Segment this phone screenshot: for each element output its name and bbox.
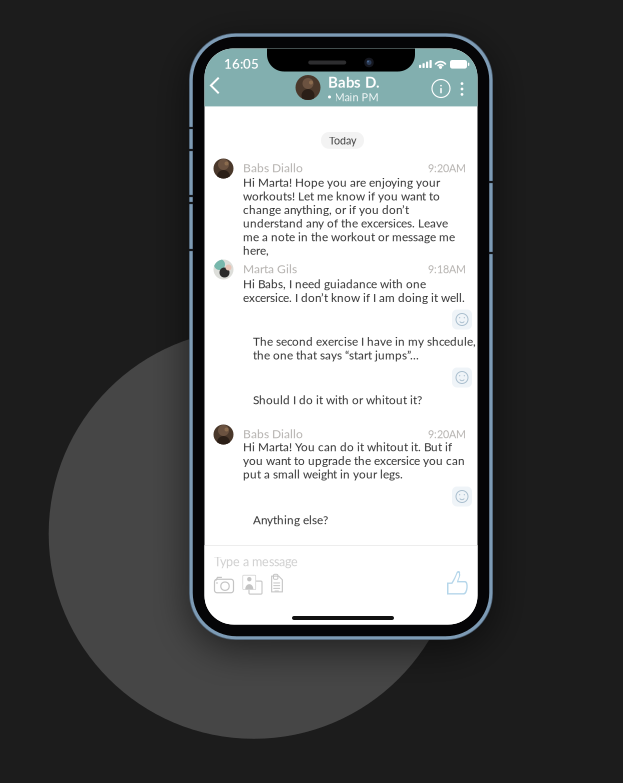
button[interactable]: Add reaction (452, 486, 472, 506)
button[interactable]: Camera (212, 572, 236, 596)
button[interactable]: Send thumbs up (441, 566, 473, 600)
staticText: you want to upgrade the excersice you ca… (243, 453, 465, 467)
staticText: here, (243, 243, 269, 257)
staticText: Hi Marta! You can do it whitout it. But … (243, 440, 452, 454)
staticText: 9:20AM (428, 162, 466, 174)
staticText: 9:20AM (428, 428, 466, 440)
button[interactable]: Back (207, 73, 237, 103)
button[interactable]: Attach document (267, 572, 287, 596)
staticText: the one that says “start jumps”... (253, 348, 419, 362)
staticText: Babs Diallo (243, 160, 303, 175)
staticText: Hi Babs, I need guiadance with one (243, 277, 426, 291)
staticText: Babs Diallo (243, 426, 303, 441)
staticText: 16:05 (224, 55, 259, 71)
staticText: Should I do it with or whitout it? (253, 393, 422, 407)
button[interactable]: Add reaction (452, 367, 472, 387)
staticText: Type a message (214, 554, 298, 569)
staticText: Marta Gils (243, 261, 297, 276)
staticText: put a small weight in your legs. (243, 467, 403, 481)
button[interactable]: Photo library (240, 572, 263, 596)
staticText: 9:18AM (428, 263, 466, 275)
staticText: Today (329, 134, 356, 147)
staticText: Main PM (334, 90, 378, 103)
button[interactable]: Add reaction (452, 309, 472, 329)
staticText: Hi Marta! Hope you are enjoying your (243, 175, 440, 189)
staticText: Anything else? (253, 513, 328, 527)
staticText: understand any of the excersices. Leave (243, 216, 448, 230)
staticText: excersice. I don’t know if I am doing it… (243, 290, 465, 304)
staticText: Babs D. (328, 73, 380, 91)
staticText: me a note in the workout or message me (243, 230, 455, 244)
button[interactable]: Conversation info (430, 77, 452, 99)
staticText: The second exercise I have in my shcedul… (253, 334, 476, 348)
staticText: workouts! Let me know if you want to (243, 189, 440, 203)
staticText: change anything, or if you don’t (243, 202, 409, 216)
button[interactable]: More options (453, 76, 471, 102)
